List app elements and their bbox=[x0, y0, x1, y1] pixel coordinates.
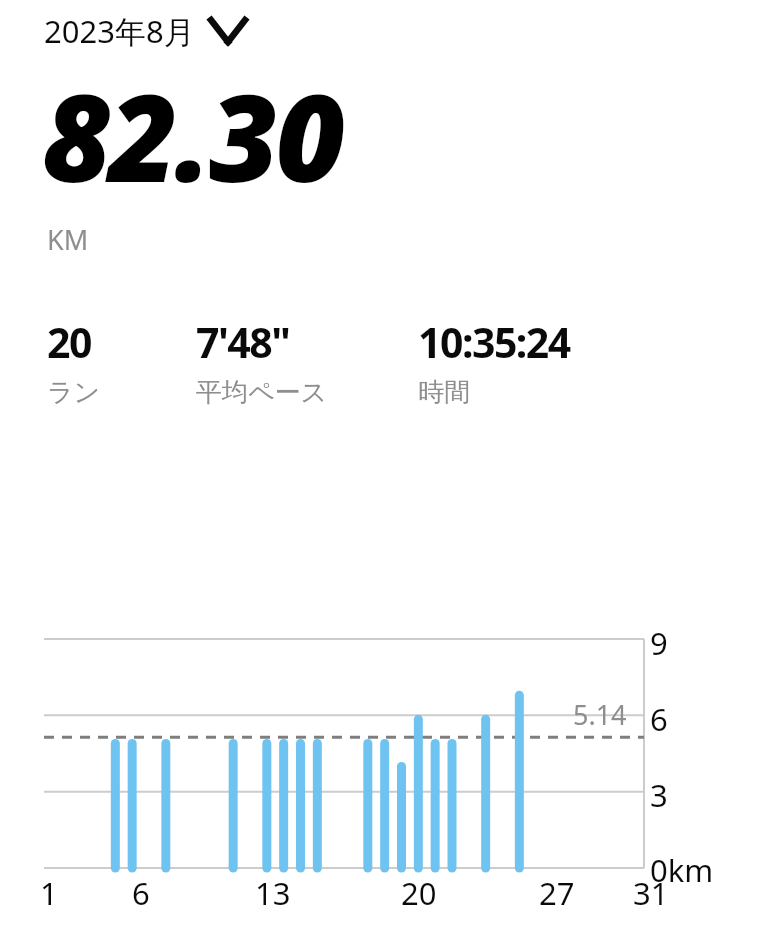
staticText: 13 bbox=[255, 872, 291, 910]
button[interactable]: 10:35:24 bbox=[418, 314, 668, 409]
staticText: 20 bbox=[401, 872, 437, 910]
staticText: 時間 bbox=[418, 376, 470, 409]
button[interactable]: 20 bbox=[47, 314, 196, 409]
staticText: 0km bbox=[650, 849, 714, 891]
staticText: 2023年8月 bbox=[44, 10, 195, 52]
staticText: 20 bbox=[47, 314, 91, 370]
staticText: 6 bbox=[650, 698, 668, 740]
staticText: 6 bbox=[132, 872, 150, 910]
staticText: 3 bbox=[650, 774, 668, 816]
staticText: 9 bbox=[650, 622, 668, 664]
other: Change month bbox=[207, 12, 249, 50]
staticText: 10:35:24 bbox=[418, 314, 570, 370]
staticText: KM bbox=[47, 221, 89, 258]
staticText: 27 bbox=[539, 872, 575, 910]
staticText: 7'48" bbox=[196, 314, 290, 370]
staticText: 1 bbox=[40, 872, 58, 910]
staticText: 5.14 bbox=[573, 696, 627, 733]
button[interactable]: 2023年8月 bbox=[40, 10, 253, 52]
staticText: 平均ペース bbox=[196, 376, 328, 409]
button[interactable]: 7'48" bbox=[196, 314, 418, 409]
staticText: ラン bbox=[47, 376, 101, 409]
staticText: 31 bbox=[633, 872, 669, 910]
staticText: 82.30 bbox=[42, 54, 343, 217]
